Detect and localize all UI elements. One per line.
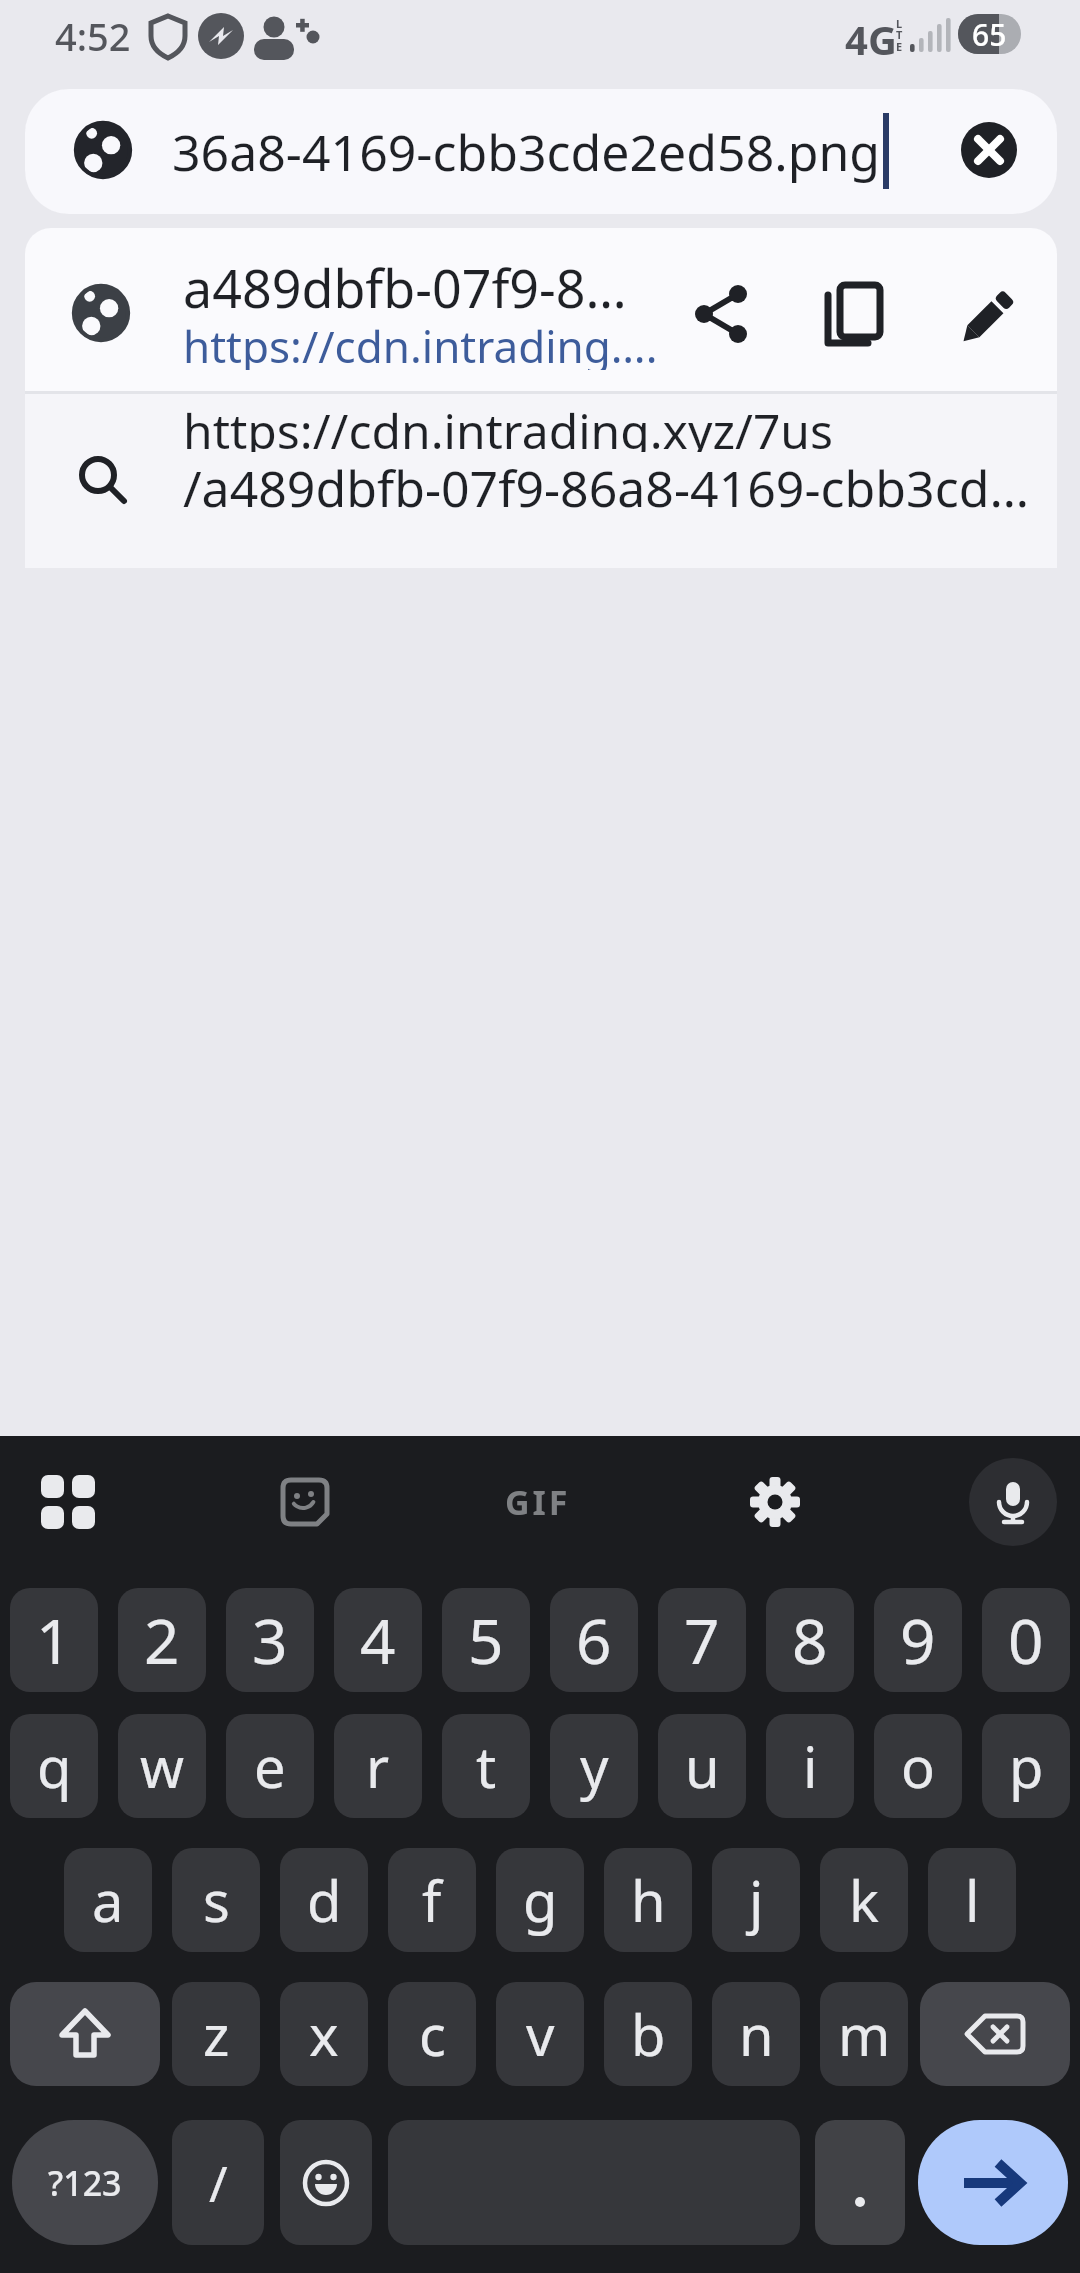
staticText: ?123 bbox=[48, 2160, 122, 2206]
staticText: f bbox=[422, 1862, 442, 1938]
staticText: x bbox=[309, 1996, 339, 2072]
button[interactable]: n bbox=[712, 1982, 800, 2086]
staticText: 7 bbox=[684, 1598, 720, 1682]
button[interactable] bbox=[815, 276, 891, 352]
button[interactable]: 4 bbox=[334, 1588, 422, 1692]
button[interactable] bbox=[28, 1468, 108, 1536]
button[interactable]: h bbox=[604, 1848, 692, 1952]
staticText: h bbox=[631, 1862, 666, 1938]
button[interactable] bbox=[969, 1458, 1057, 1546]
button[interactable]: k bbox=[820, 1848, 908, 1952]
staticText: 9 bbox=[900, 1598, 936, 1682]
button[interactable] bbox=[10, 1982, 160, 2086]
staticText: b bbox=[631, 1996, 666, 2072]
button[interactable]: b bbox=[604, 1982, 692, 2086]
staticText: c bbox=[419, 1996, 446, 2072]
button[interactable]: x bbox=[280, 1982, 368, 2086]
button[interactable]: o bbox=[874, 1714, 962, 1818]
staticText: d bbox=[307, 1862, 342, 1938]
button[interactable]: l bbox=[928, 1848, 1016, 1952]
staticText: 36a8-4169-cbb3cde2ed58.png bbox=[172, 118, 881, 186]
button[interactable]: q bbox=[10, 1714, 98, 1818]
staticText: e bbox=[254, 1728, 286, 1804]
button[interactable]: / bbox=[172, 2120, 264, 2245]
button[interactable]: f bbox=[388, 1848, 476, 1952]
button[interactable] bbox=[683, 276, 759, 352]
staticText: k bbox=[849, 1862, 879, 1938]
button[interactable]: 2 bbox=[118, 1588, 206, 1692]
button[interactable] bbox=[815, 2120, 905, 2245]
button[interactable] bbox=[280, 2120, 372, 2245]
button[interactable] bbox=[740, 1468, 810, 1536]
staticText: 4:52 bbox=[55, 10, 131, 62]
staticText: m bbox=[838, 1996, 891, 2072]
button[interactable] bbox=[25, 89, 1057, 214]
button[interactable] bbox=[961, 122, 1017, 178]
button[interactable]: 7 bbox=[658, 1588, 746, 1692]
button[interactable] bbox=[920, 1982, 1070, 2086]
button[interactable] bbox=[25, 394, 1057, 568]
staticText: o bbox=[901, 1728, 935, 1804]
staticText: 4 bbox=[360, 1598, 396, 1682]
staticText: 5 bbox=[468, 1598, 504, 1682]
staticText: i bbox=[803, 1728, 818, 1804]
button[interactable]: 1 bbox=[10, 1588, 98, 1692]
button[interactable]: g bbox=[496, 1848, 584, 1952]
staticText: n bbox=[739, 1996, 774, 2072]
button[interactable]: 3 bbox=[226, 1588, 314, 1692]
button[interactable]: i bbox=[766, 1714, 854, 1818]
button[interactable]: 6 bbox=[550, 1588, 638, 1692]
staticText: g bbox=[523, 1862, 558, 1938]
staticText: /a489dbfb-07f9-86a8-4169-cbb3cd… bbox=[183, 454, 1029, 510]
staticText: 1 bbox=[36, 1598, 72, 1682]
staticText: GIF bbox=[505, 1479, 571, 1525]
staticText: t bbox=[476, 1728, 497, 1804]
staticText: z bbox=[203, 1996, 230, 2072]
button[interactable] bbox=[270, 1468, 340, 1536]
staticText: y bbox=[580, 1728, 609, 1804]
button[interactable]: w bbox=[118, 1714, 206, 1818]
staticText: 0 bbox=[1008, 1598, 1044, 1682]
staticText: 2 bbox=[144, 1598, 180, 1682]
staticText: p bbox=[1009, 1728, 1044, 1804]
button[interactable]: a bbox=[64, 1848, 152, 1952]
staticText: / bbox=[209, 2149, 228, 2217]
button[interactable] bbox=[918, 2120, 1068, 2245]
button[interactable]: 9 bbox=[874, 1588, 962, 1692]
staticText: 4G bbox=[845, 12, 897, 60]
staticText: v bbox=[526, 1996, 555, 2072]
button[interactable] bbox=[25, 228, 1057, 393]
button[interactable]: ?123 bbox=[12, 2120, 158, 2245]
button[interactable]: 8 bbox=[766, 1588, 854, 1692]
button[interactable]: j bbox=[712, 1848, 800, 1952]
staticText: r bbox=[366, 1728, 390, 1804]
button[interactable]: p bbox=[982, 1714, 1070, 1818]
button[interactable] bbox=[952, 276, 1028, 352]
button[interactable]: t bbox=[442, 1714, 530, 1818]
button[interactable]: 5 bbox=[442, 1588, 530, 1692]
staticText: https://cdn.intrading…. bbox=[183, 316, 658, 370]
button[interactable]: e bbox=[226, 1714, 314, 1818]
staticText: j bbox=[749, 1862, 764, 1938]
staticText: 8 bbox=[792, 1598, 828, 1682]
button[interactable]: s bbox=[172, 1848, 260, 1952]
button[interactable]: GIF bbox=[495, 1468, 580, 1536]
staticText: q bbox=[37, 1728, 72, 1804]
button[interactable]: y bbox=[550, 1714, 638, 1818]
button[interactable]: m bbox=[820, 1982, 908, 2086]
staticText: a bbox=[92, 1862, 124, 1938]
button[interactable]: z bbox=[172, 1982, 260, 2086]
staticText: a489dbfb-07f9-8… bbox=[183, 252, 627, 312]
button[interactable]: d bbox=[280, 1848, 368, 1952]
button[interactable]: 0 bbox=[982, 1588, 1070, 1692]
staticText: s bbox=[203, 1862, 230, 1938]
staticText: 3 bbox=[252, 1598, 288, 1682]
button[interactable]: r bbox=[334, 1714, 422, 1818]
button[interactable]: c bbox=[388, 1982, 476, 2086]
staticText: 6 bbox=[576, 1598, 612, 1682]
button[interactable]: u bbox=[658, 1714, 746, 1818]
staticText: https://cdn.intrading.xyz/7us bbox=[183, 398, 834, 452]
button[interactable]: v bbox=[496, 1982, 584, 2086]
staticText: 65 bbox=[972, 14, 1007, 54]
